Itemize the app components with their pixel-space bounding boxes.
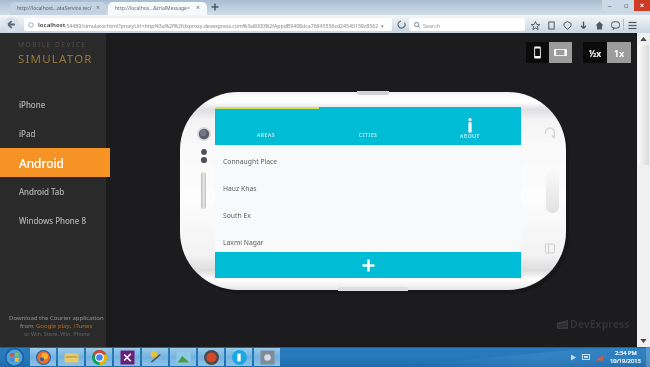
staticText: Hauz Khas <box>223 184 257 193</box>
staticText: × <box>96 3 101 13</box>
button[interactable]: Taskbar item 5 <box>141 347 169 367</box>
staticText: SIMULATOR <box>18 51 93 67</box>
button[interactable]: Android Tab <box>0 177 106 206</box>
staticText: DevExpress <box>570 317 630 331</box>
staticText: or Win. Store, Win. Phone <box>24 330 90 337</box>
staticText: South Ex <box>223 211 251 220</box>
button[interactable]: AREAS <box>215 109 317 145</box>
button[interactable]: localhost <box>24 18 392 31</box>
button[interactable]: Taskbar item 6 <box>169 347 197 367</box>
button[interactable]: Hauz Khas <box>215 175 521 202</box>
button[interactable]: Windows Phone 8 <box>0 206 106 235</box>
button[interactable]: Landscape <box>549 42 572 63</box>
staticText: MOBILE DEVICE <box>18 40 87 49</box>
button[interactable]: Minimise <box>602 0 618 11</box>
button[interactable]: http://localhos...&trialMessage= <box>108 2 207 15</box>
button[interactable]: New tab <box>209 1 221 13</box>
staticText: Windows Phone 8 <box>19 215 86 226</box>
button[interactable]: Taskbar item 0 <box>0 347 29 367</box>
staticText: , <box>70 322 74 330</box>
staticText: ABOUT <box>460 133 480 140</box>
staticText: :54489/simulator.html?proxyUrl=http%3a%2… <box>65 22 384 29</box>
button[interactable]: star <box>527 17 543 33</box>
staticText: AREAS <box>257 132 276 139</box>
button[interactable]: Taskbar item 7 <box>197 347 225 367</box>
staticText: – <box>608 1 612 11</box>
staticText: Connaught Place <box>223 157 278 166</box>
staticText: × <box>196 3 201 13</box>
button[interactable]: Close <box>634 0 650 11</box>
staticText: Android <box>19 155 64 171</box>
button[interactable]: Show desktop <box>646 347 650 367</box>
button[interactable]: Taskbar item 9 <box>253 347 281 367</box>
button[interactable]: CITIES <box>317 109 419 145</box>
button[interactable]: shield <box>559 17 575 33</box>
button[interactable]: lib <box>543 17 559 33</box>
button[interactable]: Scroll up <box>637 33 650 45</box>
staticText: iTunes <box>74 322 93 330</box>
staticText: iPhone <box>19 99 46 110</box>
staticText: http://localhos...&trialMessage= <box>115 5 190 12</box>
button[interactable]: menu <box>624 17 640 33</box>
staticText: 1x <box>614 47 625 59</box>
button[interactable]: http://localhost...ataService.svc/ <box>10 2 106 15</box>
button[interactable]: South Ex <box>215 202 521 229</box>
button[interactable]: Laxmi Nagar <box>215 229 521 256</box>
button[interactable]: Back <box>4 17 19 32</box>
button[interactable]: iPad <box>0 119 106 148</box>
button[interactable]: 1x <box>607 42 631 63</box>
button[interactable]: iPhone <box>0 90 106 119</box>
button[interactable]: Taskbar item 4 <box>113 347 141 367</box>
button[interactable]: Search <box>409 18 525 31</box>
staticText: × <box>640 1 645 11</box>
staticText: Laxmi Nagar <box>223 238 264 247</box>
staticText: CITIES <box>359 132 378 139</box>
staticText: ½x <box>589 47 602 59</box>
staticText: Download the Courier application <box>9 314 104 322</box>
staticText: localhost <box>38 21 66 29</box>
button[interactable]: Download the Courier application <box>9 314 104 337</box>
button[interactable]: Taskbar item 1 <box>29 347 57 367</box>
button[interactable]: Scroll down <box>637 335 650 347</box>
button[interactable]: down <box>575 17 591 33</box>
button[interactable]: chat <box>607 17 623 33</box>
staticText: 10/19/2015 <box>610 357 641 365</box>
button[interactable]: Home <box>546 169 559 213</box>
button[interactable]: Portrait <box>526 42 549 63</box>
staticText: ▫ <box>624 2 629 10</box>
staticText: Android Tab <box>19 186 65 197</box>
button[interactable]: Reload <box>396 19 407 30</box>
button[interactable]: Taskbar item 2 <box>57 347 85 367</box>
button[interactable]: Taskbar item 3 <box>85 347 113 367</box>
button[interactable]: Scroll thumb <box>638 45 649 165</box>
staticText: 2:34 PM <box>615 349 637 357</box>
button[interactable]: Add <box>215 252 521 278</box>
staticText: from <box>20 322 36 330</box>
staticText: Search <box>423 22 441 29</box>
button[interactable]: Maximise <box>618 0 634 11</box>
button[interactable]: Connaught Place <box>215 148 521 175</box>
button[interactable]: Android <box>0 148 110 177</box>
button[interactable]: Taskbar item 8 <box>225 347 253 367</box>
button[interactable]: home <box>591 17 607 33</box>
staticText: Google play <box>36 322 70 330</box>
staticText: iPad <box>19 128 36 139</box>
staticText: http://localhost...ataService.svc/ <box>17 5 92 12</box>
button[interactable]: ½x <box>583 42 607 63</box>
button[interactable]: ABOUT <box>419 109 521 145</box>
